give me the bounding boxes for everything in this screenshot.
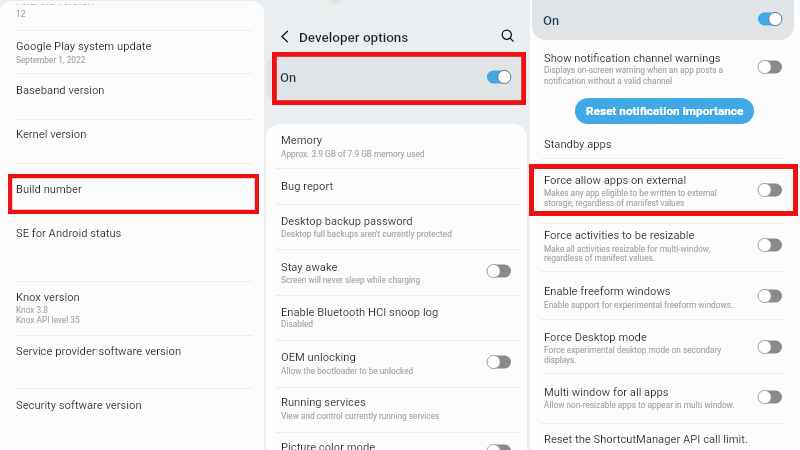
button[interactable]: Switch off [758, 338, 782, 356]
staticText: Memory [281, 134, 323, 147]
button[interactable]: Switch off [758, 236, 782, 254]
button[interactable]: Switch off [487, 353, 511, 371]
staticText: September 1, 2022 [16, 55, 86, 65]
staticText: Security software version [16, 399, 142, 412]
staticText: View and control currently running servi… [281, 411, 440, 421]
staticText: displays. [544, 355, 577, 365]
staticText: On [280, 70, 297, 85]
button[interactable]: Navigate up [278, 29, 293, 44]
button[interactable]: Search [500, 28, 516, 44]
button[interactable]: Switch off [487, 442, 511, 450]
staticText: Allow the bootloader to be unlocked [281, 366, 414, 376]
staticText: Force allow apps on external [544, 174, 687, 187]
staticText: Desktop full backups aren't currently pr… [281, 229, 452, 239]
button[interactable] [532, 0, 794, 40]
staticText: Screen will never sleep while charging [281, 275, 421, 285]
staticText: Kernel version [16, 128, 87, 141]
staticText: Standby apps [544, 138, 612, 151]
staticText: SE for Android status [16, 227, 122, 240]
staticText: Picture color mode [281, 441, 376, 450]
staticText: Desktop backup password [281, 215, 413, 228]
staticText: Knox version [16, 291, 80, 304]
staticText: Knox 3.8 [16, 305, 49, 315]
staticText: storage, regardless of manifest values [544, 198, 685, 208]
button[interactable]: Switch on [758, 10, 782, 28]
staticText: Force experimental desktop mode on secon… [544, 345, 722, 355]
button[interactable]: Reset notification importance [575, 98, 754, 124]
staticText: Baseband version [16, 84, 105, 97]
staticText: regardless of manifest values. [544, 253, 655, 263]
button[interactable]: Switch off [487, 262, 511, 280]
button[interactable]: Switch on [487, 68, 511, 86]
staticText: Google Play system update [16, 40, 152, 53]
staticText: Force activities to be resizable [544, 229, 695, 242]
staticText: Reset notification importance [586, 104, 744, 118]
staticText: Show notification channel warnings [544, 52, 721, 65]
button[interactable]: Switch off [758, 388, 782, 406]
staticText: Displays on-screen warning when an app p… [544, 65, 724, 75]
staticText: On [543, 13, 560, 28]
staticText: Disabled [281, 319, 314, 329]
staticText: Bug report [281, 180, 334, 193]
staticText: Reset the ShortcutManager API call limit… [544, 433, 748, 446]
staticText: 12 [16, 9, 26, 19]
staticText: Running services [281, 396, 366, 409]
staticText: Service provider software version [16, 345, 182, 358]
staticText: Make all activities resizable for multi-… [544, 244, 711, 254]
staticText: Stay awake [281, 261, 338, 274]
staticText: Multi window for all apps [544, 386, 669, 399]
staticText: Enable support for experimental freeform… [544, 300, 734, 310]
staticText: Developer options [299, 29, 409, 45]
staticText: Approx. 3.9 GB of 7.9 GB memory used [281, 149, 425, 159]
button[interactable]: Switch off [758, 58, 782, 76]
staticText: Build number [16, 183, 82, 196]
staticText: Knox API level 35 [16, 315, 80, 325]
staticText: Force Desktop mode [544, 331, 647, 344]
staticText: Enable Bluetooth HCI snoop log [281, 306, 439, 319]
staticText: notification without a valid channel [544, 76, 673, 86]
staticText: Enable freeform windows [544, 285, 671, 298]
button[interactable]: Switch off [758, 181, 782, 199]
button[interactable]: Switch off [758, 287, 782, 305]
button[interactable] [266, 54, 527, 103]
staticText: Makes any app eligible to be written to … [544, 188, 717, 198]
staticText: Android version [16, 0, 94, 8]
staticText: OEM unlocking [281, 351, 356, 364]
staticText: Allow non-resizable apps to appear in mu… [544, 400, 735, 410]
